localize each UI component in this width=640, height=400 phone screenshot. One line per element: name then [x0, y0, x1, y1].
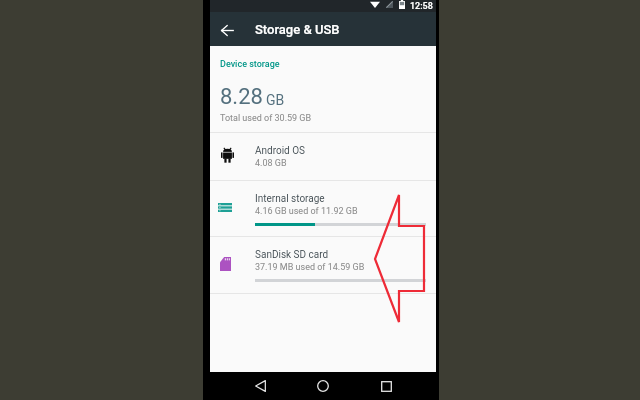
button[interactable]: Back — [248, 374, 272, 398]
button[interactable]: Recent apps — [374, 374, 398, 398]
button[interactable]: Android OS — [210, 133, 436, 180]
staticText: 37.19 MB used of 14.59 GB — [255, 262, 365, 273]
staticText: Device storage — [220, 59, 280, 70]
button[interactable]: Internal storage — [210, 181, 436, 236]
button[interactable]: Home — [311, 374, 335, 398]
staticText: 4.08 GB — [255, 158, 287, 169]
staticText: Internal storage — [255, 193, 325, 205]
staticText: GB — [266, 92, 285, 108]
staticText: 8.28 — [220, 84, 263, 110]
staticText: Storage & USB — [255, 22, 340, 37]
staticText: Android OS — [255, 145, 306, 157]
staticText: 4.16 GB used of 11.92 GB — [255, 206, 358, 217]
staticText: SanDisk SD card — [255, 249, 329, 261]
button[interactable]: SanDisk SD card — [210, 237, 436, 293]
staticText: 12:58 — [410, 1, 433, 12]
button[interactable]: Navigate back — [215, 18, 239, 42]
staticText: Total used of 30.59 GB — [220, 113, 312, 124]
